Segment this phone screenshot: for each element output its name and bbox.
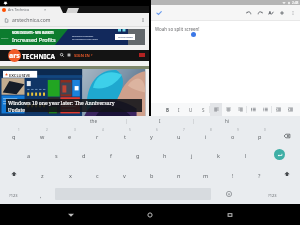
button[interactable]: Backspace	[273, 126, 300, 145]
staticText: MORE INSIGHTS • NEW MARKETS	[12, 31, 54, 35]
staticText: 1	[18, 128, 20, 132]
button[interactable]: I	[127, 116, 193, 126]
button[interactable]: Add	[276, 7, 287, 18]
button[interactable]: !	[219, 164, 246, 184]
button[interactable]: Emoji	[212, 184, 245, 204]
button[interactable]: List	[247, 103, 259, 116]
button[interactable]: 7	[165, 126, 192, 145]
button[interactable]: 9	[219, 126, 246, 145]
staticText: the	[90, 118, 97, 124]
button[interactable]: ?123	[0, 184, 27, 204]
staticText: k	[217, 152, 220, 159]
staticText: z	[41, 172, 44, 179]
button[interactable]: Redo	[254, 7, 265, 18]
button[interactable]: 8	[192, 126, 219, 145]
button[interactable]: 6	[138, 126, 165, 145]
button[interactable]: v	[111, 164, 138, 184]
staticText: ?	[258, 172, 261, 179]
staticText: h	[163, 152, 167, 159]
staticText: SIGN IN	[74, 53, 90, 58]
button[interactable]: Enter	[259, 145, 300, 164]
button[interactable]: m	[192, 164, 219, 184]
staticText: 7	[183, 128, 185, 132]
button[interactable]: b	[138, 164, 165, 184]
button[interactable]: c	[84, 164, 111, 184]
button[interactable]: s	[43, 145, 70, 164]
button[interactable]: f	[97, 145, 124, 164]
button[interactable]: Ars Technica	[2, 6, 149, 13]
button[interactable]: Formatting	[265, 7, 276, 18]
staticText: 3	[74, 128, 76, 132]
button[interactable]: xfinity	[0, 29, 149, 45]
button[interactable]: l	[232, 145, 259, 164]
button[interactable]: Back	[62, 206, 80, 224]
staticText: 2	[46, 128, 48, 132]
staticText: ars	[9, 51, 20, 61]
staticText: ×	[44, 7, 47, 12]
staticText: f	[110, 152, 112, 159]
staticText: 9	[237, 128, 239, 132]
button[interactable]: n	[165, 164, 192, 184]
button[interactable]: Recents	[221, 206, 239, 224]
staticText: Windows 10 one year later: The Anniversa…	[8, 100, 115, 112]
button[interactable]: a	[15, 145, 43, 164]
button[interactable]: Indent	[272, 103, 284, 116]
button[interactable]: ?	[246, 164, 273, 184]
button[interactable]: g	[124, 145, 151, 164]
button[interactable]: 1	[0, 126, 28, 145]
button[interactable]: LEARN MORE	[115, 34, 135, 40]
staticText: q	[12, 133, 16, 140]
button[interactable]: Menu	[67, 53, 71, 57]
button[interactable]: 2	[28, 126, 56, 145]
staticText: g	[136, 152, 140, 159]
staticText: 8	[210, 128, 212, 132]
button[interactable]: j	[178, 145, 205, 164]
button[interactable]: ,	[27, 184, 54, 204]
button[interactable]: 4	[84, 126, 111, 145]
button[interactable]: Undo	[243, 7, 254, 18]
button[interactable]: 3	[56, 126, 84, 145]
button[interactable]: More options	[287, 7, 298, 18]
button[interactable]: Shift	[0, 164, 28, 184]
button[interactable]: I	[173, 103, 185, 116]
button[interactable]: hi	[194, 116, 260, 126]
button[interactable]: h	[151, 145, 178, 164]
staticText: !	[232, 172, 234, 179]
staticText: c	[96, 172, 99, 179]
staticText: xfinity	[1, 36, 9, 39]
staticText: j	[191, 152, 193, 159]
staticText: ?123	[9, 193, 18, 198]
staticText: ?123	[268, 193, 277, 198]
button[interactable]: Align	[222, 103, 234, 116]
button[interactable]: Home	[141, 206, 159, 224]
button[interactable]: z	[28, 164, 56, 184]
button[interactable]: S	[197, 103, 209, 116]
staticText: EXCLUSIVE	[9, 73, 31, 78]
button[interactable]: Indent	[284, 103, 296, 116]
button[interactable]: 5	[111, 126, 138, 145]
button[interactable]: Done	[153, 7, 164, 18]
button[interactable]: Search	[60, 53, 64, 57]
button[interactable]: List	[259, 103, 271, 116]
staticText: u	[177, 133, 181, 140]
button[interactable]: 0	[246, 126, 273, 145]
button[interactable]: x	[56, 164, 84, 184]
button[interactable]: U	[185, 103, 197, 116]
button[interactable]: More options	[140, 17, 146, 23]
button[interactable]: Align	[210, 103, 222, 116]
staticText: w	[40, 133, 45, 140]
staticText: B	[166, 107, 169, 113]
button[interactable]: Align	[234, 103, 246, 116]
button[interactable]: the	[60, 116, 126, 126]
staticText: Woah so split screen!	[155, 26, 200, 32]
button[interactable]: d	[70, 145, 97, 164]
button[interactable]: B	[161, 103, 173, 116]
button[interactable]: ?123	[245, 184, 300, 204]
staticText: p	[258, 133, 262, 140]
button[interactable]: Shift	[273, 164, 300, 184]
staticText: LEARN MORE	[118, 36, 133, 39]
button[interactable]: k	[205, 145, 232, 164]
staticText: I	[159, 118, 161, 124]
staticText: 4	[102, 128, 104, 132]
